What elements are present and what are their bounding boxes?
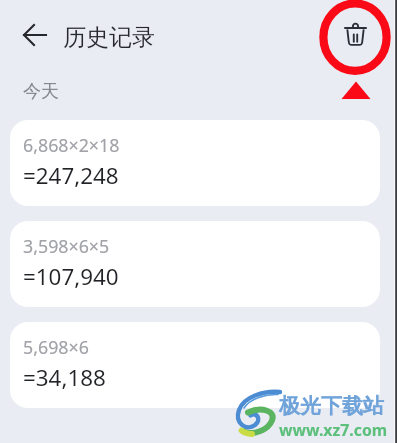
button[interactable]: 3,598×6×5 bbox=[10, 221, 380, 307]
staticText: 5,698×6 bbox=[23, 335, 89, 359]
staticText: 6,868×2×18 bbox=[23, 133, 120, 157]
staticText: 今天 bbox=[23, 80, 59, 103]
staticText: 3,598×6×5 bbox=[23, 234, 110, 258]
staticText: =107,940 bbox=[23, 261, 119, 292]
staticText: =247,248 bbox=[23, 160, 119, 191]
staticText: =34,188 bbox=[23, 362, 106, 393]
staticText: www.xz7.com bbox=[279, 419, 388, 441]
button[interactable]: 6,868×2×18 bbox=[10, 120, 380, 206]
staticText: 历史记录 bbox=[63, 23, 155, 52]
button[interactable]: 5,698×6 bbox=[10, 322, 380, 408]
button[interactable]: Back bbox=[10, 14, 58, 62]
staticText: 极光下载站 bbox=[279, 393, 384, 419]
button[interactable]: Delete history bbox=[331, 14, 379, 62]
